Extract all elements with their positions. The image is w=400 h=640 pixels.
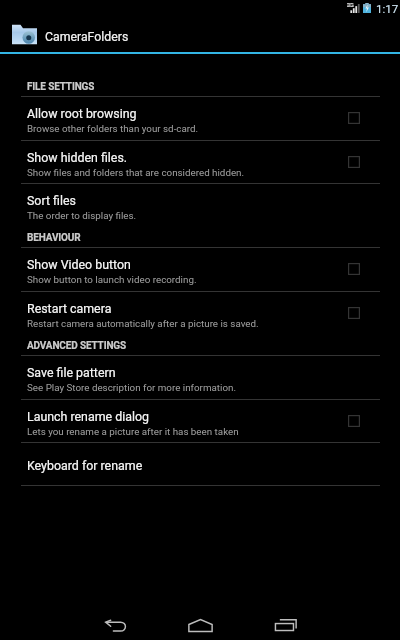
button[interactable]: Restart camera: [0, 292, 400, 334]
staticText: CameraFolders: [45, 30, 129, 44]
staticText: Keyboard for rename: [27, 458, 143, 473]
staticText: Lets you rename a picture after it has b…: [27, 426, 239, 437]
staticText: See Play Store description for more info…: [27, 382, 236, 393]
staticText: Launch rename dialog: [27, 409, 149, 424]
staticText: Show files and folders that are consider…: [27, 167, 245, 178]
staticText: Browse other folders than your sd-card.: [27, 123, 199, 134]
button[interactable]: Sort files: [0, 184, 400, 226]
button[interactable]: Recent apps: [263, 610, 309, 640]
button[interactable]: Allow root browsing: [0, 97, 400, 140]
staticText: FILE SETTINGS: [27, 81, 95, 93]
button[interactable]: Launch rename dialog: [0, 400, 400, 442]
button[interactable]: Keyboard for rename: [0, 443, 400, 485]
staticText: Show hidden files.: [27, 150, 128, 165]
button[interactable]: Save file pattern: [0, 356, 400, 399]
staticText: Allow root browsing: [27, 106, 137, 121]
staticText: ADVANCED SETTINGS: [27, 340, 126, 352]
staticText: BEHAVIOUR: [27, 232, 81, 244]
staticText: The order to display files.: [27, 210, 137, 221]
button[interactable]: Back: [92, 611, 138, 640]
staticText: Restart camera: [27, 301, 112, 316]
staticText: Restart camera automatically after a pic…: [27, 318, 259, 329]
button[interactable]: Show hidden files.: [0, 141, 400, 183]
staticText: Save file pattern: [27, 365, 116, 380]
staticText: 1:17: [376, 2, 399, 15]
button[interactable]: Show Video button: [0, 248, 400, 291]
staticText: Show Video button: [27, 257, 131, 272]
staticText: Sort files: [27, 193, 76, 208]
button[interactable]: Home: [177, 610, 223, 640]
staticText: Show button to launch video recording.: [27, 274, 197, 285]
